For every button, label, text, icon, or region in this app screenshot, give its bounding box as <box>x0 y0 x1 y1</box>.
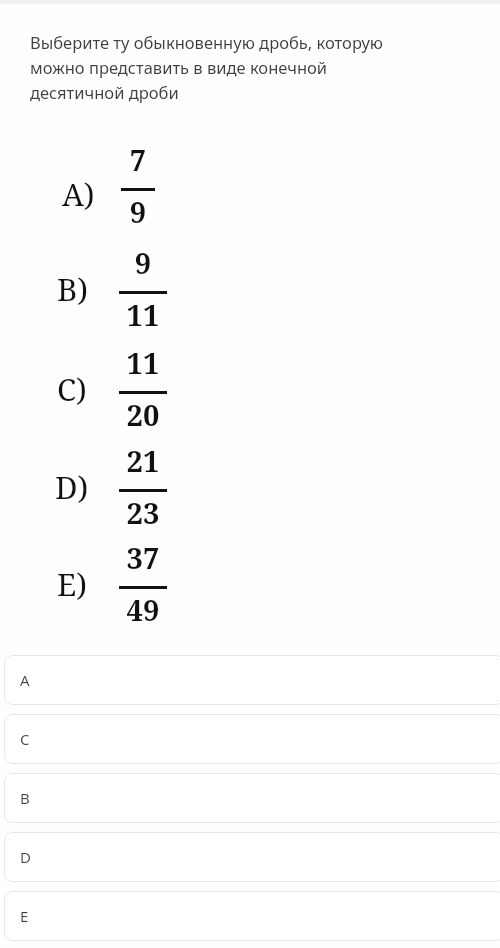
staticText: C) <box>57 368 87 410</box>
staticText: 37 <box>119 538 167 577</box>
button[interactable]: A <box>4 655 500 705</box>
staticText: 49 <box>119 590 167 629</box>
staticText: D) <box>55 466 89 508</box>
staticText: A <box>20 670 30 690</box>
staticText: 11 <box>119 295 167 334</box>
staticText: D <box>20 847 31 867</box>
staticText: E <box>20 906 29 926</box>
button[interactable]: D <box>4 832 500 882</box>
staticText: Выберите ту обыкновенную дробь, которую … <box>30 31 384 103</box>
staticText: B <box>20 788 30 808</box>
staticText: 21 <box>119 441 167 480</box>
staticText: 20 <box>119 395 167 434</box>
button[interactable]: E <box>4 891 500 941</box>
staticText: B) <box>57 268 88 310</box>
button[interactable]: B <box>4 773 500 823</box>
staticText: A) <box>62 173 95 215</box>
staticText: 9 <box>119 243 167 282</box>
staticText: C <box>20 729 30 749</box>
staticText: 9 <box>121 192 155 231</box>
staticText: 7 <box>121 140 155 179</box>
staticText: 11 <box>119 343 167 382</box>
button[interactable]: C <box>4 714 500 764</box>
staticText: 23 <box>119 493 167 532</box>
staticText: E) <box>57 563 88 605</box>
